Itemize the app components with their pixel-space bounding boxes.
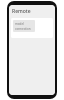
staticText: Remote	[12, 8, 31, 15]
staticText: connection	[15, 27, 31, 30]
staticText: model	[15, 22, 24, 26]
button[interactable]: Device details	[11, 18, 53, 38]
button[interactable]: Remote	[9, 5, 55, 18]
button[interactable]: Device details	[13, 20, 35, 32]
